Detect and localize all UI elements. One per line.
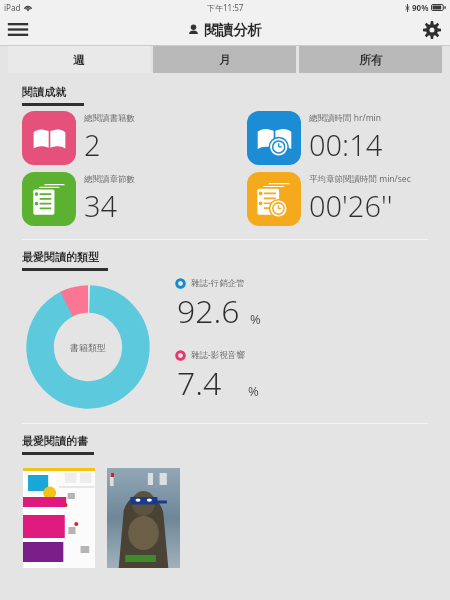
staticText: 00:14 [309, 125, 383, 164]
staticText: % [248, 382, 259, 400]
staticText: 90% [412, 2, 429, 13]
staticText: % [250, 310, 261, 328]
staticText: 閱讀分析 [204, 21, 262, 39]
button[interactable]: 總閱讀章節數 [22, 172, 225, 226]
button[interactable]: 月 [153, 46, 296, 73]
button[interactable]: Book 2 [107, 468, 180, 568]
staticText: 最愛閱讀的書 [22, 434, 88, 448]
staticText: iPad [4, 2, 21, 13]
staticText: 閱讀成就 [22, 85, 66, 99]
button[interactable]: 平均章節閱讀時間 min/sec [247, 172, 450, 226]
button[interactable]: Settings [414, 14, 450, 45]
staticText: 總閱讀章節數 [84, 174, 135, 185]
button[interactable]: 總閱讀書籍數 [22, 111, 225, 165]
staticText: 下午11:57 [207, 2, 244, 13]
button[interactable]: Book 1 [23, 468, 95, 568]
staticText: 最愛閱讀的類型 [22, 250, 99, 264]
staticText: 雜誌-行銷企管 [191, 277, 245, 289]
button[interactable]: 總閱讀時間 hr/min [247, 111, 450, 165]
staticText: 書籍類型 [70, 342, 106, 353]
button[interactable]: Menu [0, 14, 36, 45]
staticText: 週 [73, 52, 85, 67]
button[interactable]: 所有 [299, 46, 442, 73]
button[interactable]: 週 [8, 46, 150, 73]
staticText: 總閱讀時間 hr/min [309, 112, 382, 124]
staticText: 7.4 [177, 361, 222, 405]
staticText: 00'26'' [309, 186, 393, 225]
staticText: 34 [84, 186, 118, 225]
staticText: 2 [84, 125, 101, 164]
staticText: 平均章節閱讀時間 min/sec [309, 173, 411, 185]
staticText: 雜誌-影視音響 [191, 349, 245, 361]
staticText: 總閱讀書籍數 [84, 113, 135, 124]
staticText: 92.6 [177, 289, 240, 333]
staticText: 月 [219, 52, 231, 67]
staticText: 所有 [359, 52, 383, 67]
